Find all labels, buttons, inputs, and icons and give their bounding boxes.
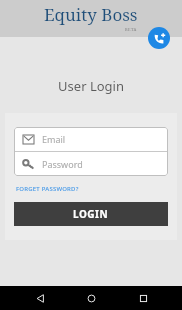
staticText: Equity Boss bbox=[44, 3, 138, 26]
button[interactable]: LOGIN bbox=[14, 202, 168, 226]
button[interactable]: Home bbox=[79, 286, 103, 310]
staticText: User Login bbox=[0, 77, 182, 95]
staticText: FORGET PASSWORD? bbox=[16, 185, 79, 193]
staticText: Password bbox=[42, 158, 83, 170]
button[interactable]: FORGET PASSWORD? bbox=[14, 184, 81, 194]
button[interactable]: Back bbox=[28, 286, 52, 310]
button[interactable]: Password bbox=[14, 152, 168, 176]
button[interactable]: Recent apps bbox=[131, 286, 155, 310]
staticText: Email bbox=[42, 133, 66, 145]
button[interactable]: Email bbox=[14, 127, 168, 151]
staticText: LOGIN bbox=[73, 207, 109, 221]
button[interactable]: Call support bbox=[148, 27, 170, 49]
staticText: BETA bbox=[125, 27, 137, 32]
